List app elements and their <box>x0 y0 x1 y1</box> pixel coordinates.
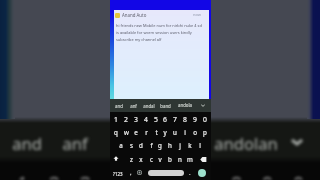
staticText: x <box>139 155 143 163</box>
button[interactable]: Enter <box>198 169 206 177</box>
button[interactable]: Shift <box>113 155 119 162</box>
button[interactable]: c <box>146 153 156 164</box>
staticText: 8 <box>230 171 243 180</box>
button[interactable]: andolan <box>177 102 193 109</box>
button[interactable]: 4 <box>141 114 151 125</box>
staticText: d <box>139 141 143 149</box>
staticText: n <box>178 155 182 163</box>
button[interactable]: Comma <box>128 169 133 176</box>
button[interactable]: anf <box>125 102 141 109</box>
staticText: 3 <box>79 171 92 180</box>
button[interactable]: g <box>155 139 165 150</box>
staticText: l <box>199 141 201 149</box>
staticText: y <box>163 128 167 136</box>
button[interactable]: q <box>111 126 121 137</box>
button[interactable]: s <box>126 139 136 150</box>
button[interactable]: 6 <box>160 114 170 125</box>
button[interactable]: t <box>151 126 161 137</box>
staticText: j <box>179 141 181 149</box>
staticText: Anand Auto <box>122 12 147 18</box>
button[interactable]: ?123 <box>113 170 123 177</box>
staticText: h <box>168 141 172 149</box>
button[interactable]: Emoji <box>137 170 142 175</box>
staticText: band <box>160 103 171 109</box>
button[interactable]: u <box>170 126 180 137</box>
staticText: e <box>134 128 138 136</box>
staticText: w <box>124 128 129 136</box>
button[interactable]: z <box>126 153 136 164</box>
button[interactable]: f <box>146 139 156 150</box>
staticText: hi friends new Mobile num for nirbhi nuk… <box>116 23 202 28</box>
button[interactable]: y <box>160 126 170 137</box>
button[interactable]: Period <box>187 169 192 176</box>
staticText: ?123 <box>113 171 123 177</box>
staticText: andolan <box>177 102 193 109</box>
button[interactable] <box>114 10 209 45</box>
staticText: 1 <box>16 171 29 180</box>
button[interactable]: 7 <box>170 114 180 125</box>
staticText: 8 <box>183 115 187 124</box>
staticText: 5 <box>154 115 158 124</box>
button[interactable]: w <box>121 126 131 137</box>
staticText: 2 <box>48 171 61 180</box>
staticText: anf <box>130 103 137 109</box>
staticText: andolan <box>214 132 278 154</box>
staticText: 0 <box>203 115 207 124</box>
staticText: 9 <box>193 115 197 124</box>
button[interactable]: Space <box>148 170 184 176</box>
button[interactable]: 3 <box>131 114 141 125</box>
staticText: and <box>12 132 42 154</box>
button[interactable]: Backspace <box>199 156 207 163</box>
button[interactable]: p <box>200 126 210 137</box>
button[interactable]: j <box>175 139 185 150</box>
button[interactable]: 8 <box>180 114 190 125</box>
staticText: now <box>193 12 201 17</box>
staticText: t <box>155 128 158 136</box>
button[interactable]: i <box>180 126 190 137</box>
staticText: g <box>158 141 162 149</box>
button[interactable]: 2 <box>121 114 131 125</box>
staticText: and <box>115 103 123 109</box>
button[interactable]: 5 <box>151 114 161 125</box>
staticText: subscribe my channel alf <box>116 37 162 42</box>
staticText: r <box>145 128 148 136</box>
button[interactable]: l <box>195 139 205 150</box>
staticText: , <box>130 169 132 176</box>
staticText: a <box>119 141 123 149</box>
button[interactable]: d <box>136 139 146 150</box>
button[interactable]: and <box>111 102 127 109</box>
button[interactable]: andal <box>141 102 157 109</box>
staticText: 0 <box>292 171 305 180</box>
staticText: 6 <box>163 115 167 124</box>
staticText: i <box>184 128 186 136</box>
button[interactable]: Anand Auto <box>122 12 147 18</box>
button[interactable]: r <box>141 126 151 137</box>
button[interactable]: x <box>136 153 146 164</box>
staticText: 3 <box>134 115 138 124</box>
button[interactable]: 1 <box>111 114 121 125</box>
staticText: m <box>187 155 193 163</box>
button[interactable]: n <box>175 153 185 164</box>
button[interactable]: b <box>165 153 175 164</box>
other: App icon <box>115 13 120 18</box>
staticText: z <box>130 155 133 163</box>
staticText: is available for worm session users kind… <box>116 30 192 35</box>
button[interactable]: v <box>155 153 165 164</box>
button[interactable]: k <box>185 139 195 150</box>
button[interactable]: e <box>131 126 141 137</box>
button[interactable]: h <box>165 139 175 150</box>
button[interactable]: More suggestions <box>199 102 207 109</box>
staticText: 2 <box>124 115 128 124</box>
button[interactable]: m <box>185 153 195 164</box>
staticText: s <box>130 141 133 149</box>
staticText: u <box>173 128 177 136</box>
button[interactable]: 9 <box>190 114 200 125</box>
staticText: . <box>189 169 191 176</box>
staticText: k <box>188 141 192 149</box>
button[interactable]: a <box>116 139 126 150</box>
button[interactable]: o <box>190 126 200 137</box>
button[interactable]: 0 <box>200 114 210 125</box>
button[interactable]: band <box>157 102 173 109</box>
staticText: 9 <box>261 171 274 180</box>
staticText: anf <box>62 132 88 154</box>
